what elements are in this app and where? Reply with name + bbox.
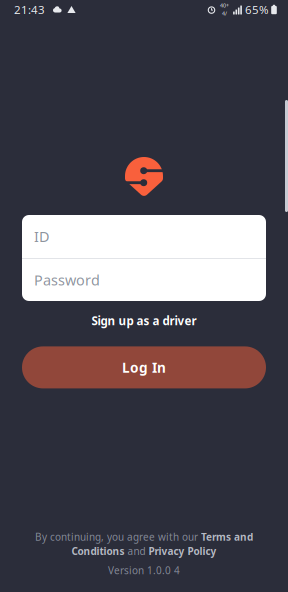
staticText: ID xyxy=(34,227,50,246)
button[interactable]: Privacy Policy xyxy=(148,544,216,558)
button[interactable]: Log In xyxy=(22,346,266,388)
staticText: By continuing, you agree with our xyxy=(35,530,201,543)
button[interactable]: Sign up as a driver xyxy=(81,309,206,332)
staticText: 4/ xyxy=(222,10,227,17)
staticText: and xyxy=(124,544,148,558)
button[interactable]: Conditions xyxy=(71,544,124,558)
staticText: Password xyxy=(34,270,100,289)
button[interactable]: Terms and xyxy=(201,530,253,543)
staticText: Privacy Policy xyxy=(148,544,216,558)
staticText: 65% xyxy=(245,2,269,17)
staticText: Terms and xyxy=(201,530,253,543)
button[interactable]: Password xyxy=(22,259,266,301)
staticText: Conditions xyxy=(71,544,124,558)
button[interactable]: ID xyxy=(22,215,266,258)
staticText: Sign up as a driver xyxy=(91,313,196,328)
staticText: 21:43 xyxy=(14,2,45,17)
staticText: Log In xyxy=(122,358,166,376)
staticText: 40+ xyxy=(220,2,229,9)
staticText: Version 1.0.0 4 xyxy=(108,564,180,577)
